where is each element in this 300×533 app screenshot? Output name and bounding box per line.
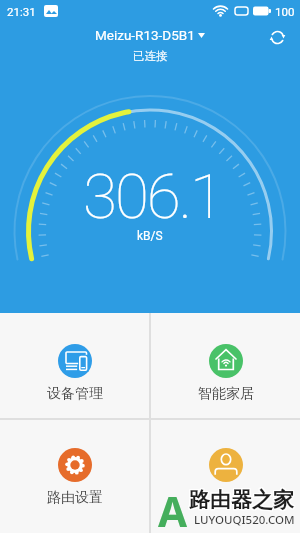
staticText: 路由器之家 xyxy=(189,488,294,514)
staticText: 路由器之家 xyxy=(190,486,295,512)
staticText: 路由设置 xyxy=(47,489,103,507)
staticText: 路由器之家 xyxy=(188,488,293,514)
staticText: 路由器之家 xyxy=(190,488,295,514)
staticText: kB/S xyxy=(137,229,163,243)
button[interactable] xyxy=(151,420,300,533)
staticText: 设备管理 xyxy=(47,385,103,403)
staticText: 智能家居 xyxy=(198,385,254,403)
staticText: 路由器之家 xyxy=(189,486,294,512)
button[interactable]: Meizu-R13-D5B1 xyxy=(95,27,205,43)
staticText: A xyxy=(158,482,188,533)
staticText: 306.1 xyxy=(83,160,223,233)
staticText: 已连接 xyxy=(133,49,168,63)
staticText: 21:31 xyxy=(7,5,36,18)
button[interactable]: 设备管理 xyxy=(0,313,149,418)
staticText: 路由器之家 xyxy=(188,486,293,512)
button[interactable]: 路由设置 xyxy=(0,420,149,533)
staticText: 路由器之家 xyxy=(188,487,293,513)
button[interactable]: 智能家居 xyxy=(151,313,300,418)
staticText: 100 xyxy=(275,5,295,18)
staticText: 路由器之家 xyxy=(189,487,294,513)
staticText: Meizu-R13-D5B1 xyxy=(95,27,195,43)
button[interactable] xyxy=(267,27,287,47)
staticText: LUYOUQI520.COM xyxy=(194,512,295,528)
staticText: 路由器之家 xyxy=(190,487,295,513)
